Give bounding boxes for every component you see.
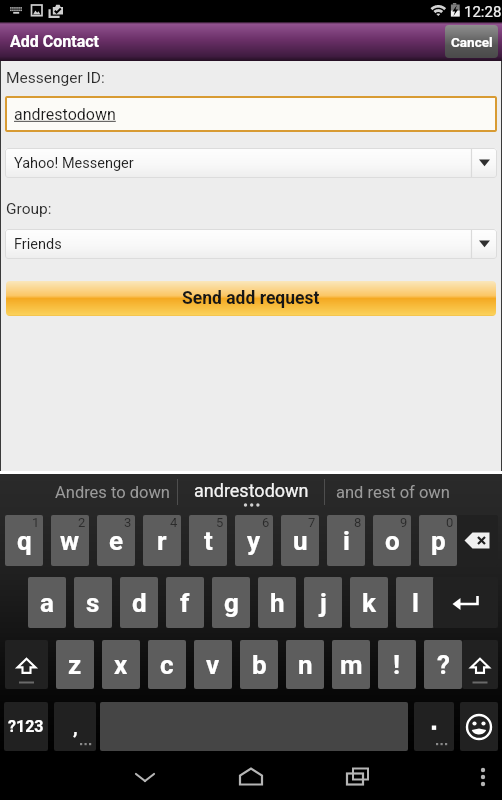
staticText: n [298, 650, 313, 680]
button[interactable]: Comma [54, 702, 96, 751]
staticText: d [132, 588, 147, 618]
staticText: q [17, 526, 32, 556]
staticText: Messenger ID: [6, 69, 105, 87]
button[interactable]: Backspace [457, 515, 498, 566]
staticText: Add Contact [10, 32, 99, 51]
staticText: y [247, 526, 261, 556]
button[interactable]: a [28, 577, 66, 628]
staticText: g [224, 588, 239, 618]
staticText: k [362, 588, 376, 618]
staticText: j [320, 588, 327, 618]
button[interactable]: y [235, 515, 273, 566]
staticText: ? [437, 650, 450, 680]
button[interactable]: Home [211, 753, 291, 800]
button[interactable]: r [143, 515, 181, 566]
staticText: Group: [6, 200, 52, 218]
staticText: b [252, 650, 267, 680]
staticText: o [385, 526, 400, 556]
button[interactable]: Yahoo! Messenger [5, 148, 497, 178]
button[interactable]: d [120, 577, 158, 628]
staticText: v [206, 650, 220, 680]
staticText: p [431, 526, 446, 556]
button[interactable]: j [304, 577, 342, 628]
staticText: Yahoo! Messenger [14, 155, 134, 172]
staticText: Send add request [182, 288, 320, 309]
staticText: 12:28 [464, 3, 502, 21]
button[interactable]: k [350, 577, 388, 628]
staticText: w [60, 526, 80, 556]
button[interactable]: z [56, 640, 94, 689]
button[interactable]: b [240, 640, 278, 689]
button[interactable]: Andres to down [48, 474, 177, 512]
staticText: i [343, 526, 350, 556]
staticText: r [157, 526, 167, 556]
staticText: ?123 [8, 717, 44, 736]
button[interactable]: l [396, 577, 434, 628]
button[interactable]: and rest of own [326, 474, 460, 512]
button[interactable]: e [97, 515, 135, 566]
button[interactable]: t [189, 515, 227, 566]
staticText: Friends [14, 236, 62, 253]
staticText: 8 [354, 515, 362, 530]
button[interactable]: g [212, 577, 250, 628]
button[interactable]: andrestodown [178, 474, 325, 512]
staticText: t [204, 526, 213, 556]
button[interactable]: Emoji [460, 702, 498, 751]
button[interactable]: Shift [462, 640, 498, 689]
staticText: 7 [308, 515, 316, 530]
button[interactable]: p [419, 515, 457, 566]
staticText: andrestodown [14, 105, 116, 124]
button[interactable]: f [166, 577, 204, 628]
staticText: 3 [124, 515, 132, 530]
staticText: 2 [78, 515, 86, 530]
button[interactable]: Send add request [6, 281, 496, 316]
staticText: 6 [262, 515, 270, 530]
button[interactable]: h [258, 577, 296, 628]
button[interactable]: Recents [318, 753, 398, 800]
staticText: 4 [170, 515, 178, 530]
button[interactable]: ?123 [4, 702, 48, 751]
staticText: ! [393, 650, 401, 680]
staticText: 9 [400, 515, 408, 530]
button[interactable]: m [332, 640, 370, 689]
button[interactable]: v [194, 640, 232, 689]
button[interactable]: u [281, 515, 319, 566]
button[interactable]: More options [464, 753, 502, 800]
staticText: and rest of own [336, 483, 450, 502]
button[interactable]: n [286, 640, 324, 689]
staticText: s [86, 588, 100, 618]
button[interactable]: Friends [5, 229, 497, 259]
staticText: l [412, 588, 419, 618]
button[interactable]: x [102, 640, 140, 689]
staticText: x [114, 650, 128, 680]
staticText: h [270, 588, 285, 618]
staticText: 1 [32, 515, 40, 530]
button[interactable]: ? [424, 640, 462, 689]
staticText: u [293, 526, 308, 556]
staticText: f [180, 588, 190, 618]
staticText: , [73, 716, 78, 738]
button[interactable]: Cancel [445, 25, 498, 58]
button[interactable]: q [5, 515, 43, 566]
staticText: e [109, 526, 124, 556]
staticText: c [160, 650, 174, 680]
staticText: 0 [446, 515, 454, 530]
staticText: Cancel [451, 34, 493, 50]
staticText: a [40, 588, 54, 618]
button[interactable]: c [148, 640, 186, 689]
button[interactable]: s [74, 577, 112, 628]
button[interactable]: Enter [433, 577, 498, 628]
staticText: 5 [216, 515, 224, 530]
button[interactable]: i [327, 515, 365, 566]
button[interactable]: Shift [5, 640, 48, 689]
button[interactable]: Period [414, 702, 454, 751]
staticText: z [68, 650, 82, 680]
staticText: m [340, 650, 363, 680]
staticText: Andres to down [55, 483, 170, 502]
button[interactable]: Hide keyboard [105, 753, 185, 800]
button[interactable]: w [51, 515, 89, 566]
button[interactable]: andrestodown [5, 96, 497, 132]
button[interactable]: o [373, 515, 411, 566]
button[interactable]: ! [378, 640, 416, 689]
